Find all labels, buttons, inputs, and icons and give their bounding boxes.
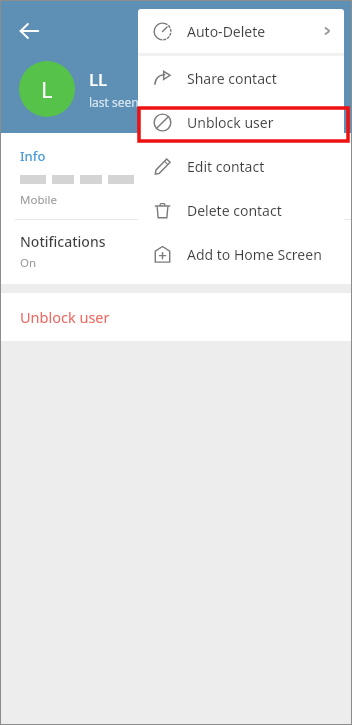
- staticText: Unblock user: [187, 113, 334, 132]
- button[interactable]: Notifications: [1, 232, 351, 284]
- button[interactable]: Unblock user: [1, 293, 351, 341]
- staticText: On: [20, 255, 37, 271]
- button[interactable]: Add to Home Screen: [138, 232, 344, 276]
- button[interactable]: Back: [7, 9, 51, 53]
- staticText: Add to Home Screen: [187, 245, 334, 264]
- button[interactable]: Unblock user: [138, 100, 344, 144]
- staticText: L: [41, 74, 53, 104]
- staticText: Delete contact: [187, 201, 334, 220]
- button[interactable]: Delete contact: [138, 188, 344, 232]
- staticText: Notifications: [20, 232, 106, 251]
- button[interactable]: Auto-Delete: [138, 9, 344, 53]
- staticText: Share contact: [187, 69, 334, 88]
- staticText: last seen recently: [89, 94, 187, 110]
- staticText: Info: [20, 147, 46, 165]
- button[interactable]: Edit contact: [138, 144, 344, 188]
- staticText: Edit contact: [187, 157, 334, 176]
- staticText: Unblock user: [20, 307, 110, 327]
- staticText: LL: [89, 68, 108, 91]
- staticText: Mobile: [20, 192, 57, 208]
- button[interactable]: Share contact: [138, 56, 344, 100]
- staticText: Auto-Delete: [187, 22, 320, 41]
